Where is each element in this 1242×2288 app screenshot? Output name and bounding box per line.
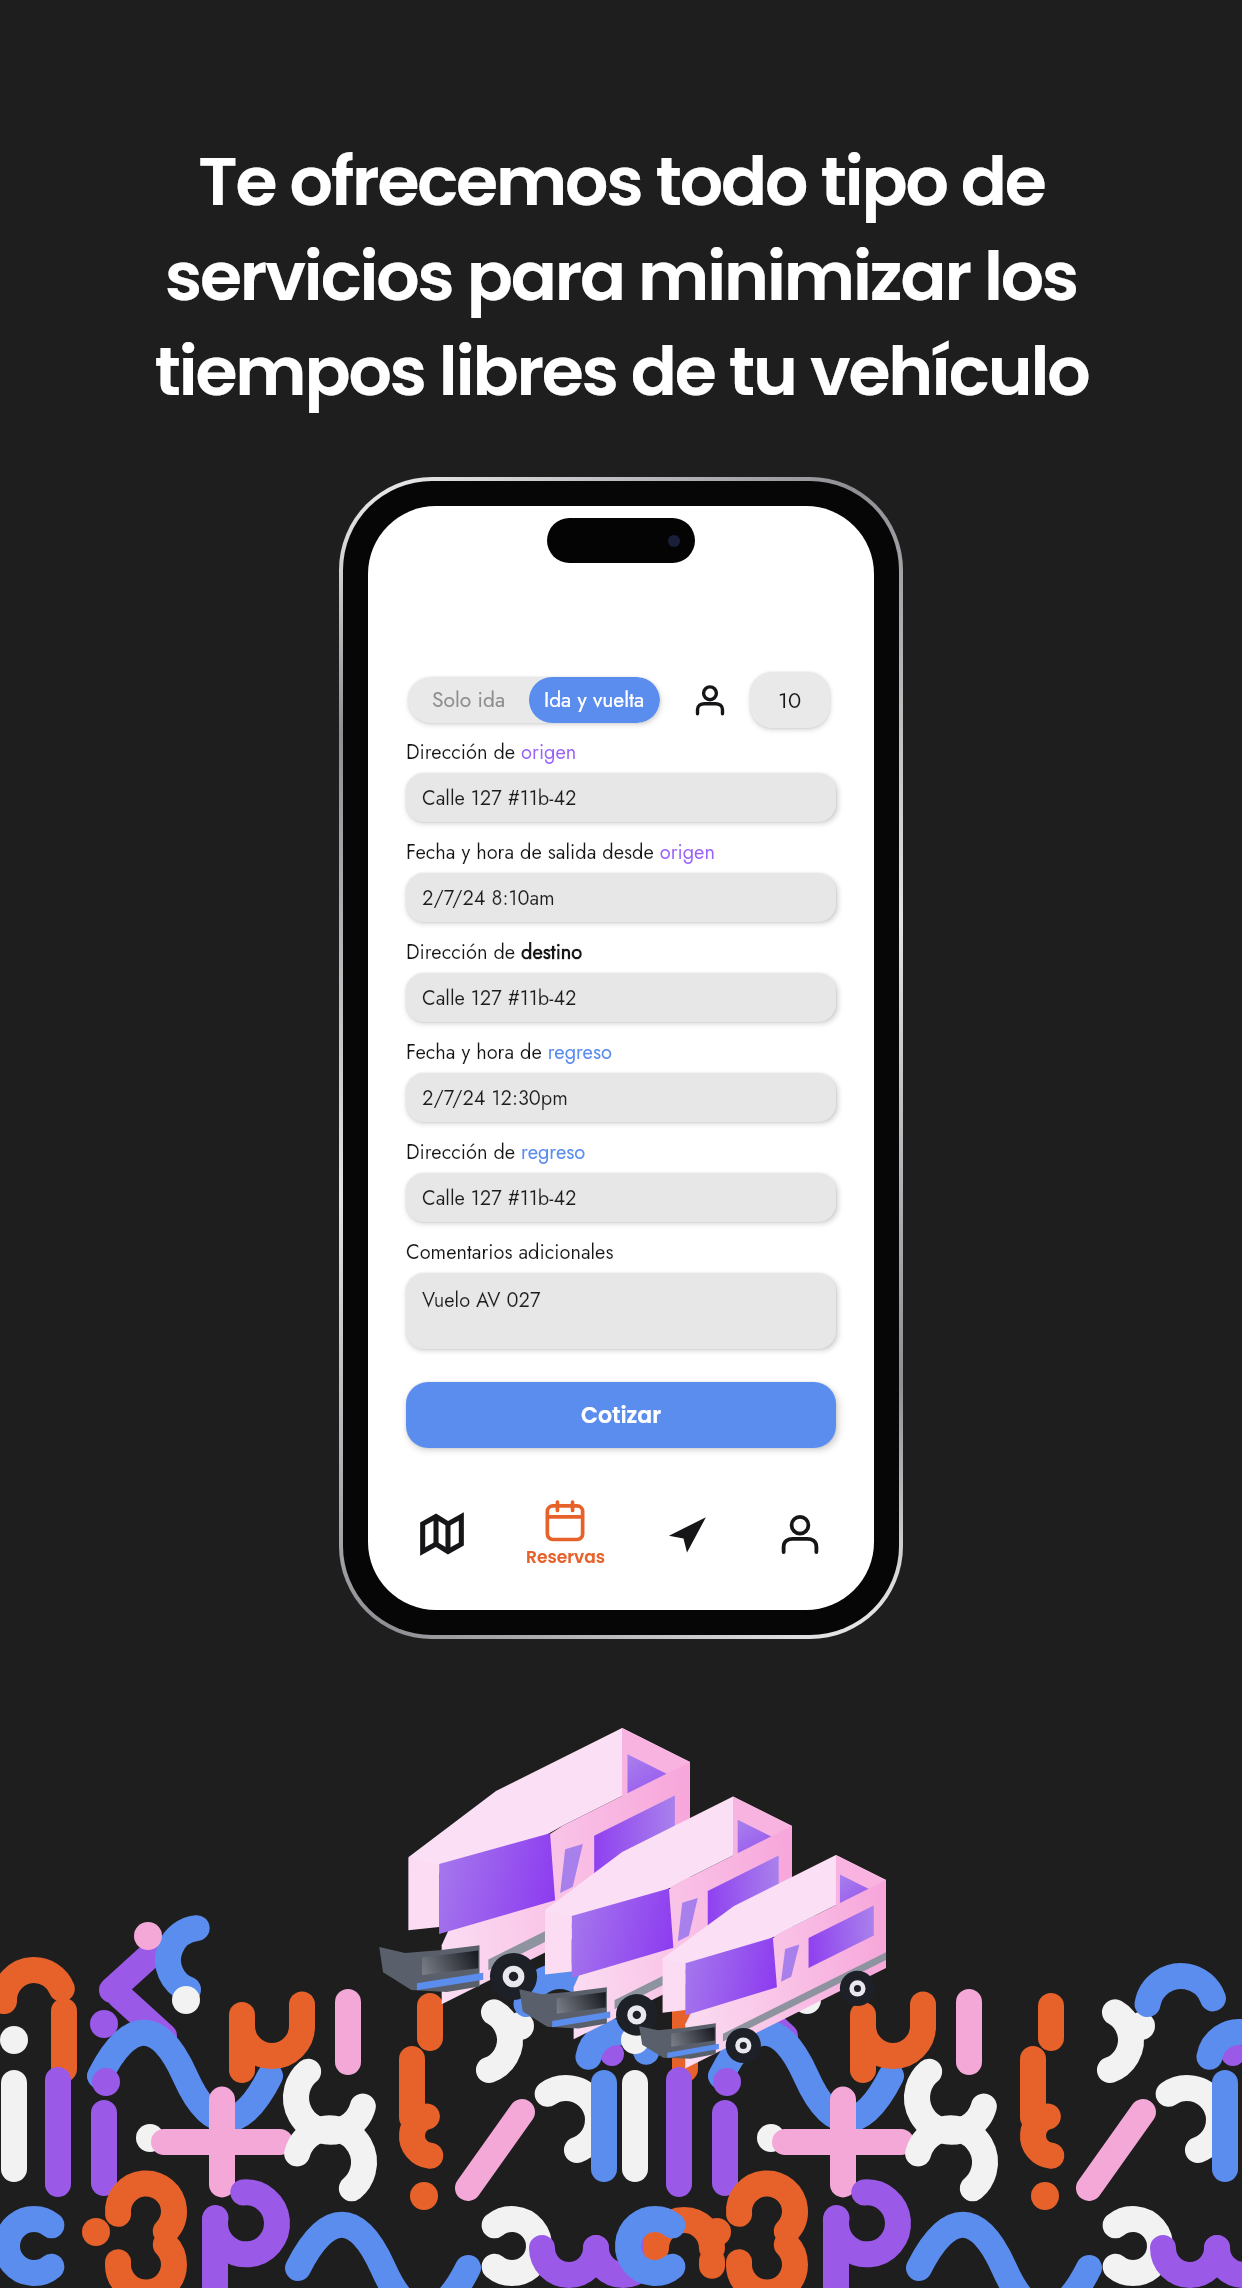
staticText: 2/7/24 8:10am (422, 884, 555, 913)
staticText: Dirección de regreso (406, 1138, 586, 1167)
staticText: tiempos libres de tu vehículo (154, 324, 1089, 419)
button[interactable]: Calle 127 #11b-42 (406, 773, 836, 822)
staticText: Comentarios adicionales (406, 1238, 614, 1267)
button[interactable]: Solo ida (408, 677, 529, 723)
button[interactable]: Mapa (404, 1496, 480, 1572)
button[interactable]: Calle 127 #11b-42 (406, 1173, 836, 1222)
staticText: Calle 127 #11b-42 (422, 1184, 577, 1213)
staticText: Dirección de destino (406, 938, 583, 967)
staticText: Fecha y hora de regreso (406, 1038, 612, 1067)
button[interactable]: Cotizar (406, 1382, 836, 1448)
staticText: Fecha y hora de salida desde origen (406, 838, 715, 867)
button[interactable]: Ida y vuelta (529, 677, 660, 723)
button[interactable]: 2/7/24 8:10am (406, 873, 836, 922)
staticText: Calle 127 #11b-42 (422, 784, 577, 813)
button[interactable]: 2/7/24 12:30pm (406, 1073, 836, 1122)
staticText: Solo ida (432, 685, 506, 715)
staticText: Ida y vuelta (544, 685, 645, 715)
staticText: servicios para minimizar los (165, 229, 1077, 324)
button[interactable]: Calle 127 #11b-42 (406, 973, 836, 1022)
button[interactable]: Reservas (517, 1494, 613, 1574)
staticText: Dirección de origen (406, 738, 577, 767)
staticText: 10 (778, 684, 802, 716)
staticText: Cotizar (581, 1400, 662, 1431)
button[interactable]: Vuelo AV 027 (406, 1273, 836, 1349)
button[interactable]: Navegar (649, 1496, 725, 1572)
button[interactable]: Perfil (762, 1496, 838, 1572)
staticText: Vuelo AV 027 (422, 1286, 541, 1315)
button[interactable]: Pasajeros (686, 676, 734, 724)
button[interactable]: 10 (750, 672, 830, 728)
staticText: Te ofrecemos todo tipo de (198, 134, 1045, 229)
staticText: Calle 127 #11b-42 (422, 984, 577, 1013)
staticText: 2/7/24 12:30pm (422, 1084, 568, 1113)
staticText: Reservas (526, 1545, 605, 1569)
